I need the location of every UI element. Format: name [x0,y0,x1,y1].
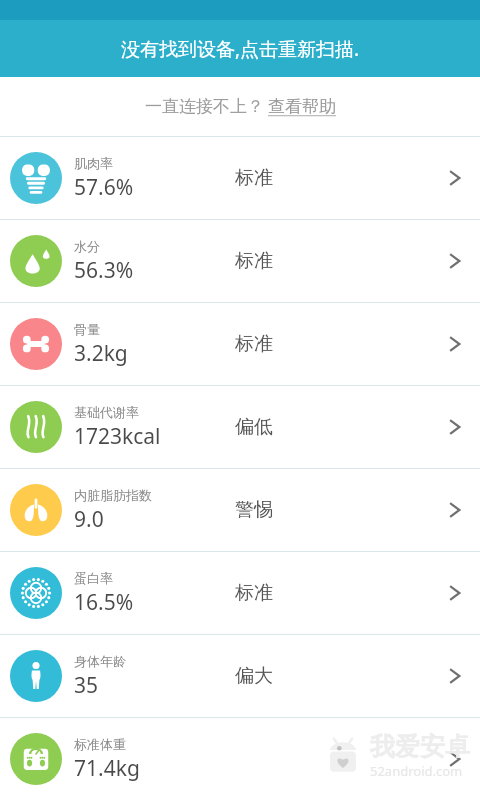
staticText: 标准 [235,332,273,356]
staticText: 35 [74,671,99,700]
staticText: 9.0 [74,505,104,534]
staticText: 3.2kg [74,339,128,368]
staticText: 16.5% [74,588,134,617]
staticText: 骨量 [74,321,100,337]
staticText: 我爱安卓 [370,731,470,762]
staticText: 查看帮助 [268,96,336,117]
staticText: 没有找到设备,点击重新扫描. [121,36,360,62]
staticText: 偏大 [235,664,273,688]
other: 查看详情 [444,665,466,687]
staticText: 蛋白率 [74,570,113,586]
button[interactable]: 水分 [0,220,480,302]
staticText: 基础代谢率 [74,404,139,420]
button[interactable]: 基础代谢率 [0,386,480,468]
staticText: 1723kcal [74,422,161,451]
other: 查看详情 [444,250,466,272]
other: 查看详情 [444,416,466,438]
button[interactable]: 标准体重 [0,718,480,800]
button[interactable]: 骨量 [0,303,480,385]
other: 查看详情 [444,582,466,604]
staticText: 水分 [74,238,100,254]
staticText: 52android.com [370,762,463,780]
other: 查看详情 [444,499,466,521]
staticText: 警惕 [235,498,273,522]
staticText: 57.6% [74,173,134,202]
button[interactable]: 蛋白率 [0,552,480,634]
staticText: 标准 [235,166,273,190]
staticText: 标准 [235,249,273,273]
staticText: 内脏脂肪指数 [74,487,152,503]
other: 查看详情 [444,748,466,770]
button[interactable]: 一直连接不上？ [0,77,480,136]
button[interactable]: 肌肉率 [0,137,480,219]
other: 查看详情 [444,167,466,189]
staticText: 71.4kg [74,754,140,783]
staticText: 身体年龄 [74,653,126,669]
button[interactable]: 身体年龄 [0,635,480,717]
staticText: 一直连接不上？ [145,96,264,117]
button[interactable]: 没有找到设备,点击重新扫描. [0,20,480,77]
staticText: 肌肉率 [74,155,113,171]
staticText: 标准 [235,581,273,605]
button[interactable]: 内脏脂肪指数 [0,469,480,551]
staticText: 56.3% [74,256,134,285]
staticText: 偏低 [235,415,273,439]
staticText: 标准体重 [74,736,126,752]
other: 查看详情 [444,333,466,355]
